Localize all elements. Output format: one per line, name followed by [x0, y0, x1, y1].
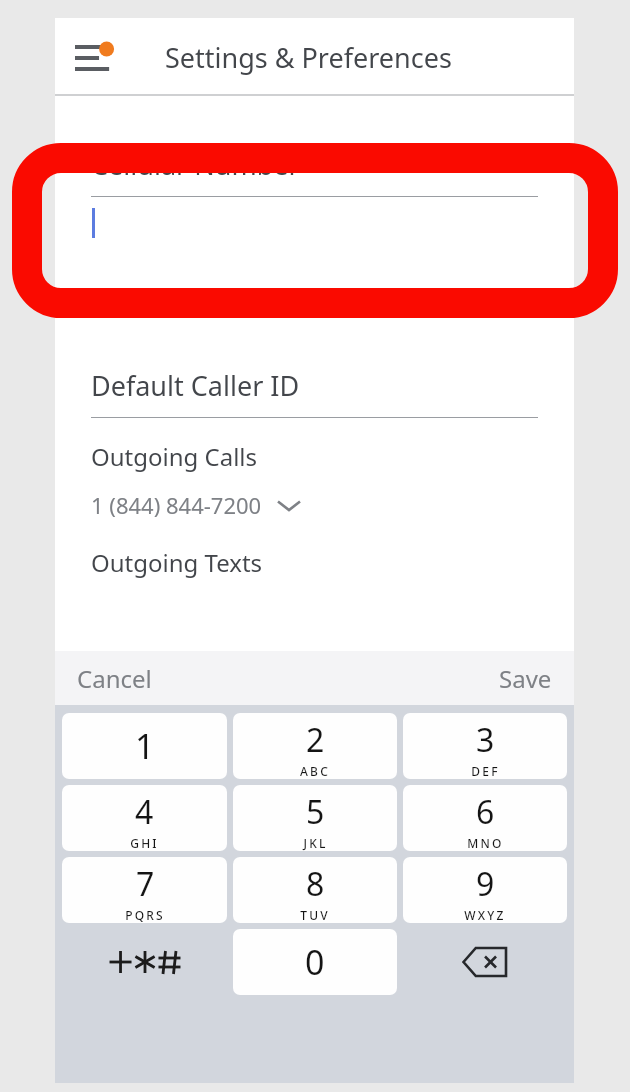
staticText: 5 [306, 790, 325, 834]
staticText: Default Caller ID [91, 367, 300, 404]
button[interactable]: 5 [233, 785, 397, 851]
staticText: 0 [305, 939, 325, 985]
button[interactable]: Save [477, 651, 574, 705]
staticText: Settings & Preferences [165, 39, 452, 76]
staticText: 1 [135, 723, 155, 769]
button[interactable]: 7 [62, 857, 227, 923]
staticText: Outgoing Calls [91, 440, 258, 473]
button[interactable]: 3 [403, 713, 567, 779]
staticText: GHI [130, 835, 159, 851]
button[interactable] [55, 197, 574, 257]
button[interactable]: 0 [233, 929, 397, 995]
staticText: WXYZ [464, 907, 506, 923]
button[interactable]: 1 [62, 713, 227, 779]
staticText: 7 [136, 862, 155, 906]
staticText: TUV [300, 907, 330, 923]
staticText: ABC [300, 763, 330, 779]
button[interactable]: Open navigation menu [67, 30, 121, 84]
button[interactable]: Backspace [403, 929, 567, 995]
button[interactable]: 8 [233, 857, 397, 923]
staticText: Cellular Number [91, 146, 300, 183]
staticText: Save [499, 662, 552, 695]
button[interactable]: 1 (844) 844-7200 [91, 490, 302, 520]
button[interactable]: 4 [62, 785, 227, 851]
button[interactable]: Cancel [55, 651, 174, 705]
staticText: 6 [476, 790, 495, 834]
button[interactable]: 2 [233, 713, 397, 779]
staticText: 8 [306, 862, 325, 906]
staticText: Outgoing Texts [91, 546, 263, 579]
staticText: MNO [467, 835, 504, 851]
staticText: 1 (844) 844-7200 [91, 490, 262, 520]
staticText: 2 [306, 718, 325, 762]
staticText: JKL [303, 835, 328, 851]
button[interactable]: Plus, star, pound symbols [62, 929, 227, 995]
staticText: 4 [135, 790, 154, 834]
staticText: Cancel [77, 662, 152, 695]
staticText: PQRS [125, 907, 165, 923]
staticText: 3 [476, 718, 495, 762]
staticText: DEF [471, 763, 500, 779]
staticText: 9 [476, 862, 495, 906]
button[interactable]: 6 [403, 785, 567, 851]
button[interactable]: 9 [403, 857, 567, 923]
